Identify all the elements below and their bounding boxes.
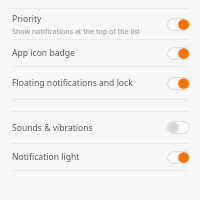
button[interactable]: Toggle Notification light [163,147,194,168]
staticText: Priority [12,13,42,25]
button[interactable]: Floating notifications and lock screen [0,67,200,99]
staticText: Floating notifications and lock screen [12,77,157,89]
button[interactable]: Toggle Sounds & vibrations [163,117,194,138]
staticText: Sounds & vibrations [12,122,93,134]
button[interactable]: Toggle Floating notifications and lock s… [163,73,194,94]
button[interactable]: Priority [0,9,200,39]
button[interactable]: Sounds & vibrations [0,112,200,143]
staticText: Show notifications at the top of the lis… [12,26,141,36]
staticText: Notification light [12,151,80,163]
staticText: App icon badge [12,47,75,59]
button[interactable]: Toggle App icon badge [163,43,194,64]
button[interactable]: Toggle Priority [163,14,194,35]
button[interactable]: App icon badge [0,40,200,66]
button[interactable]: Notification light [0,144,200,170]
